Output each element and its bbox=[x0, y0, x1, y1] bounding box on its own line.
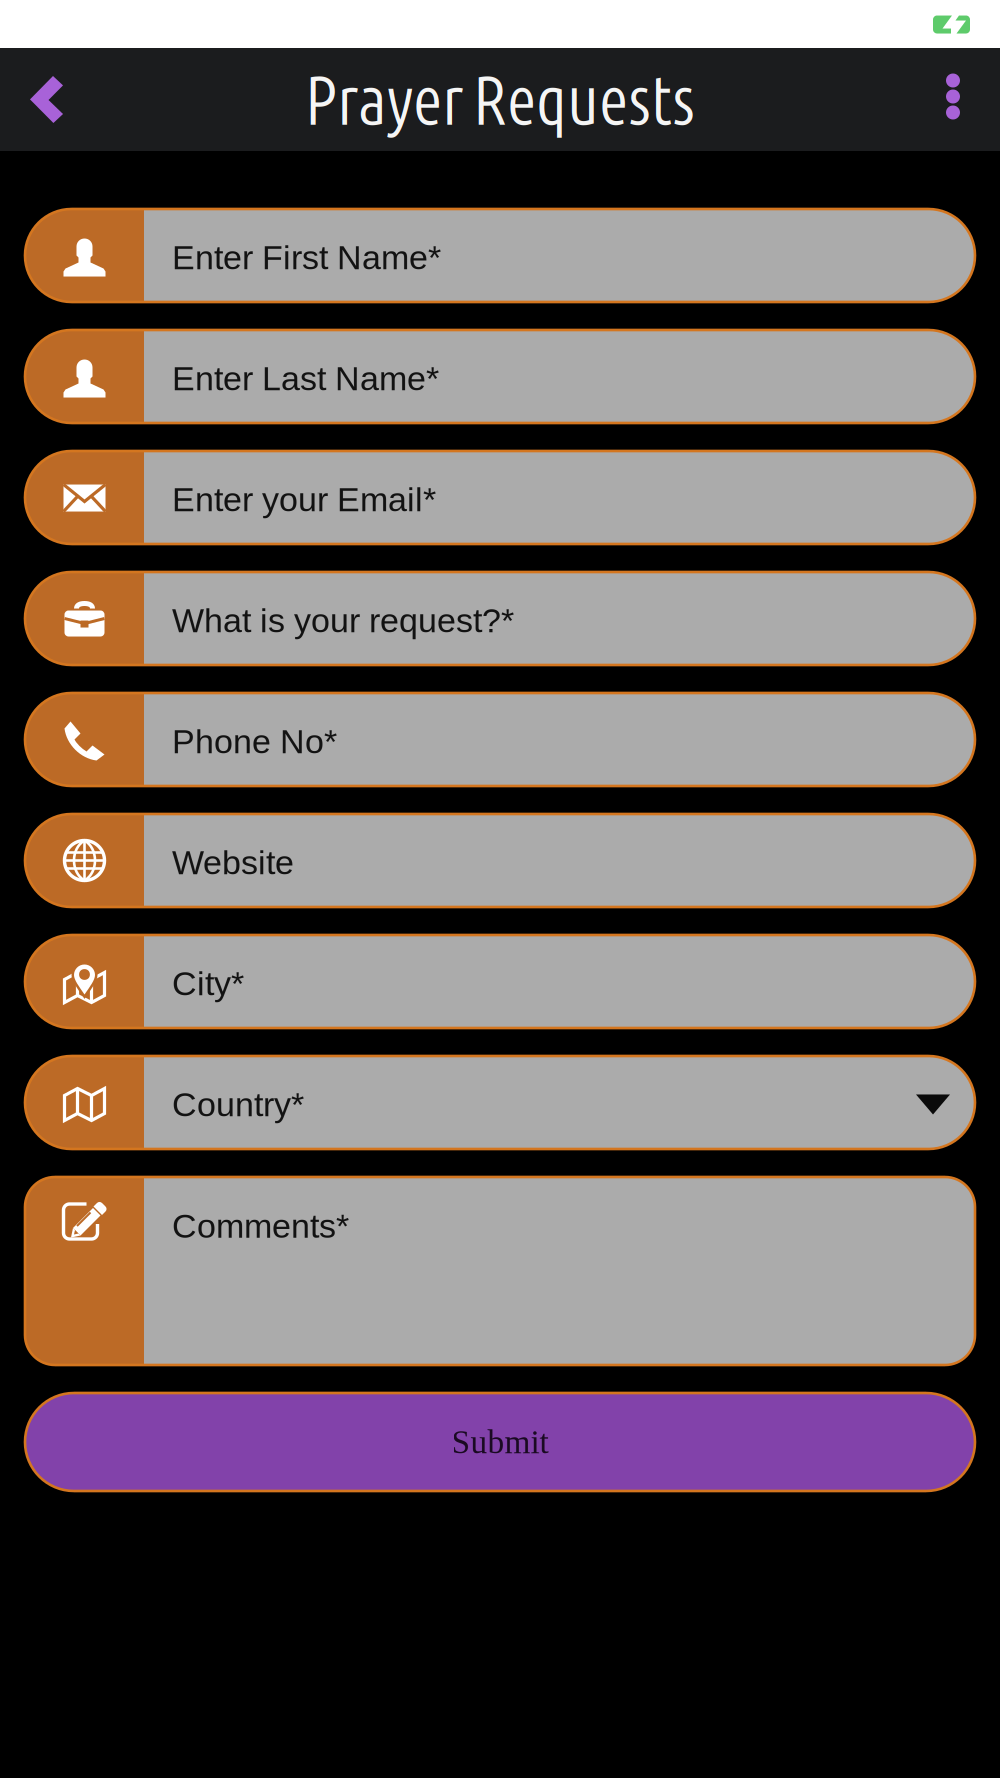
staticText: What is your request?* bbox=[172, 601, 514, 639]
staticText: Country* bbox=[172, 1085, 304, 1123]
staticText: Phone No* bbox=[172, 722, 337, 760]
staticText: City* bbox=[172, 964, 244, 1002]
button[interactable]: Enter First Name* bbox=[25, 209, 975, 302]
button[interactable]: Country* bbox=[25, 1056, 975, 1149]
button[interactable]: Comments* bbox=[25, 1177, 975, 1365]
staticText: Enter Last Name* bbox=[172, 359, 439, 397]
staticText: Submit bbox=[451, 1423, 548, 1460]
staticText: Website bbox=[172, 843, 294, 881]
button[interactable]: Phone No* bbox=[25, 693, 975, 786]
button[interactable]: Enter your Email* bbox=[25, 451, 975, 544]
button[interactable]: Website bbox=[25, 814, 975, 907]
button[interactable]: More options bbox=[916, 48, 1000, 151]
button[interactable]: Enter Last Name* bbox=[25, 330, 975, 423]
button[interactable]: City* bbox=[25, 935, 975, 1028]
staticText: Enter your Email* bbox=[172, 480, 436, 518]
button[interactable]: Back bbox=[0, 48, 93, 151]
button[interactable]: Submit bbox=[25, 1393, 975, 1491]
staticText: Prayer Requests bbox=[305, 61, 695, 138]
button[interactable]: What is your request?* bbox=[25, 572, 975, 665]
staticText: Comments* bbox=[172, 1207, 349, 1245]
staticText: Enter First Name* bbox=[172, 238, 441, 276]
